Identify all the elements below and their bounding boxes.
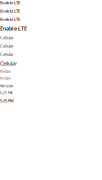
staticText: Enable LTE bbox=[0, 8, 20, 14]
staticText: Enable LTE bbox=[0, 25, 27, 32]
staticText: Cellular bbox=[0, 43, 14, 49]
staticText: 5:25 PM bbox=[0, 91, 12, 95]
staticText: Cellular bbox=[0, 52, 14, 57]
staticText: Cellular bbox=[0, 35, 14, 40]
staticText: Enable LTE bbox=[0, 17, 20, 22]
staticText: Verizon bbox=[0, 83, 13, 88]
staticText: Verizon bbox=[0, 70, 11, 73]
staticText: 5:25 PM bbox=[0, 98, 14, 103]
staticText: Enable LTE bbox=[0, 0, 20, 5]
staticText: Cellular bbox=[0, 60, 17, 67]
staticText: Verizon bbox=[0, 77, 11, 80]
